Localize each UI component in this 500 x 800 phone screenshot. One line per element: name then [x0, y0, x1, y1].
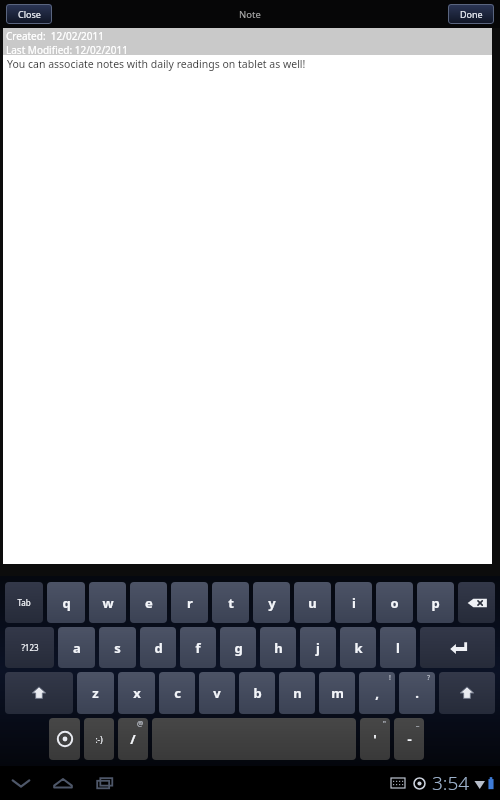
staticText: i: [352, 594, 356, 612]
button[interactable]: ?123: [5, 627, 54, 668]
staticText: f: [195, 639, 201, 657]
button[interactable]: .: [399, 672, 435, 714]
staticText: v: [213, 684, 221, 702]
button[interactable]: ,: [359, 672, 395, 714]
button[interactable]: s: [99, 627, 136, 668]
staticText: r: [187, 594, 193, 612]
staticText: h: [274, 639, 283, 657]
button[interactable]: Created: 12/02/2011: [3, 28, 492, 564]
staticText: a: [73, 639, 81, 657]
button[interactable]: v: [199, 672, 235, 714]
button[interactable]: j: [300, 627, 336, 668]
button[interactable]: Voice input: [49, 718, 80, 760]
staticText: c: [174, 684, 181, 702]
button[interactable]: o: [376, 582, 413, 623]
button[interactable]: m: [319, 672, 355, 714]
staticText: s: [114, 639, 121, 657]
button[interactable]: Home: [50, 772, 76, 794]
button[interactable]: Shift: [439, 672, 495, 714]
staticText: g: [234, 639, 243, 657]
staticText: _: [416, 719, 420, 729]
staticText: l: [396, 639, 400, 657]
button[interactable]: Close: [6, 4, 52, 24]
staticText: ?123: [21, 642, 39, 653]
staticText: b: [253, 684, 262, 702]
staticText: !: [389, 673, 391, 683]
button[interactable]: Tab: [5, 582, 43, 623]
button[interactable]: Space: [152, 718, 356, 760]
button[interactable]: ': [360, 718, 390, 760]
staticText: Note: [239, 8, 261, 21]
staticText: y: [268, 594, 276, 612]
button[interactable]: g: [220, 627, 256, 668]
button[interactable]: Enter: [420, 627, 495, 668]
button[interactable]: n: [279, 672, 315, 714]
button[interactable]: k: [340, 627, 376, 668]
button[interactable]: p: [417, 582, 454, 623]
staticText: .: [415, 684, 419, 702]
button[interactable]: Backspace: [458, 582, 495, 623]
button[interactable]: a: [58, 627, 95, 668]
staticText: u: [308, 594, 317, 612]
staticText: You can associate notes with daily readi…: [7, 57, 306, 71]
button[interactable]: w: [89, 582, 126, 623]
staticText: 3:54: [432, 770, 470, 796]
staticText: o: [390, 594, 399, 612]
staticText: ?: [427, 673, 431, 683]
staticText: k: [354, 639, 363, 657]
button[interactable]: Back: [8, 772, 34, 794]
staticText: ': [373, 730, 377, 748]
staticText: :-): [95, 734, 103, 745]
staticText: Done: [460, 8, 483, 20]
button[interactable]: i: [335, 582, 372, 623]
button[interactable]: l: [380, 627, 416, 668]
staticText: -: [407, 730, 412, 748]
staticText: Created: 12/02/2011: [6, 29, 104, 43]
button[interactable]: h: [260, 627, 296, 668]
staticText: ": [383, 719, 386, 729]
staticText: d: [154, 639, 163, 657]
button[interactable]: /: [118, 718, 148, 760]
button[interactable]: u: [294, 582, 331, 623]
staticText: ,: [375, 684, 379, 702]
staticText: Tab: [17, 597, 31, 608]
staticText: m: [331, 684, 344, 702]
button[interactable]: c: [159, 672, 195, 714]
button[interactable]: e: [130, 582, 167, 623]
button[interactable]: f: [180, 627, 216, 668]
button[interactable]: y: [253, 582, 290, 623]
button[interactable]: b: [239, 672, 275, 714]
button[interactable]: Done: [448, 4, 494, 24]
button[interactable]: Shift: [5, 672, 73, 714]
staticText: e: [145, 594, 153, 612]
button[interactable]: :-): [84, 718, 114, 760]
button[interactable]: Recent apps: [92, 772, 118, 794]
staticText: n: [293, 684, 302, 702]
staticText: x: [133, 684, 141, 702]
staticText: z: [92, 684, 99, 702]
staticText: Last Modified: 12/02/2011: [6, 43, 128, 55]
staticText: w: [102, 594, 114, 612]
staticText: /: [130, 730, 136, 748]
staticText: t: [228, 594, 234, 612]
button[interactable]: q: [47, 582, 85, 623]
staticText: j: [316, 639, 320, 657]
staticText: p: [431, 594, 440, 612]
staticText: Close: [18, 8, 41, 20]
button[interactable]: t: [212, 582, 249, 623]
staticText: @: [137, 719, 144, 729]
staticText: q: [62, 594, 71, 612]
button[interactable]: r: [171, 582, 208, 623]
button[interactable]: x: [118, 672, 155, 714]
button[interactable]: d: [140, 627, 176, 668]
button[interactable]: -: [394, 718, 424, 760]
button[interactable]: z: [77, 672, 114, 714]
